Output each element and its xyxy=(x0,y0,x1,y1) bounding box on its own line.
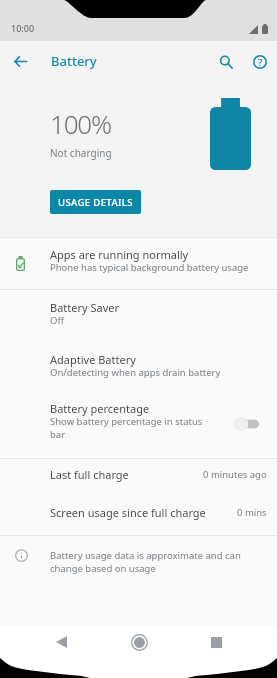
button[interactable]: Last full charge xyxy=(0,459,277,497)
staticText: 0 minutes ago xyxy=(203,468,267,481)
staticText: Last full charge xyxy=(50,467,129,482)
staticText: Battery xyxy=(51,52,97,70)
staticText: Battery percentage xyxy=(50,401,150,416)
button[interactable]: Battery percentage xyxy=(0,394,277,458)
button[interactable]: Apps are running normally xyxy=(0,238,277,289)
button[interactable]: USAGE DETAILS xyxy=(50,190,141,214)
staticText: Phone has typical background battery usa… xyxy=(50,261,249,274)
staticText: Battery usage data is approximate and ca… xyxy=(50,549,257,575)
button[interactable]: Battery Saver xyxy=(0,290,277,342)
staticText: Screen usage since full charge xyxy=(50,505,206,520)
staticText: Show battery percentage in status bar xyxy=(50,415,208,441)
button[interactable]: Screen usage since full charge xyxy=(0,497,277,535)
staticText: Off xyxy=(50,314,64,327)
staticText: Adaptive Battery xyxy=(50,352,136,367)
staticText: 10:00 xyxy=(11,22,35,34)
staticText: ? xyxy=(258,56,263,69)
staticText: Battery Saver xyxy=(50,300,120,315)
staticText: Apps are running normally xyxy=(50,247,189,262)
button[interactable]: Home xyxy=(122,625,156,659)
staticText: USAGE DETAILS xyxy=(58,196,133,209)
button[interactable]: Back xyxy=(44,625,78,659)
button[interactable]: Back xyxy=(0,41,41,82)
staticText: Not charging xyxy=(50,146,112,160)
button[interactable]: Help xyxy=(240,42,277,82)
staticText: 0 mins xyxy=(237,506,267,519)
button[interactable]: Adaptive Battery xyxy=(0,342,277,394)
button[interactable]: Recents xyxy=(199,625,233,659)
staticText: 100% xyxy=(50,106,111,141)
staticText: On/detecting when apps drain battery xyxy=(50,366,221,379)
button[interactable]: Search xyxy=(206,42,246,82)
